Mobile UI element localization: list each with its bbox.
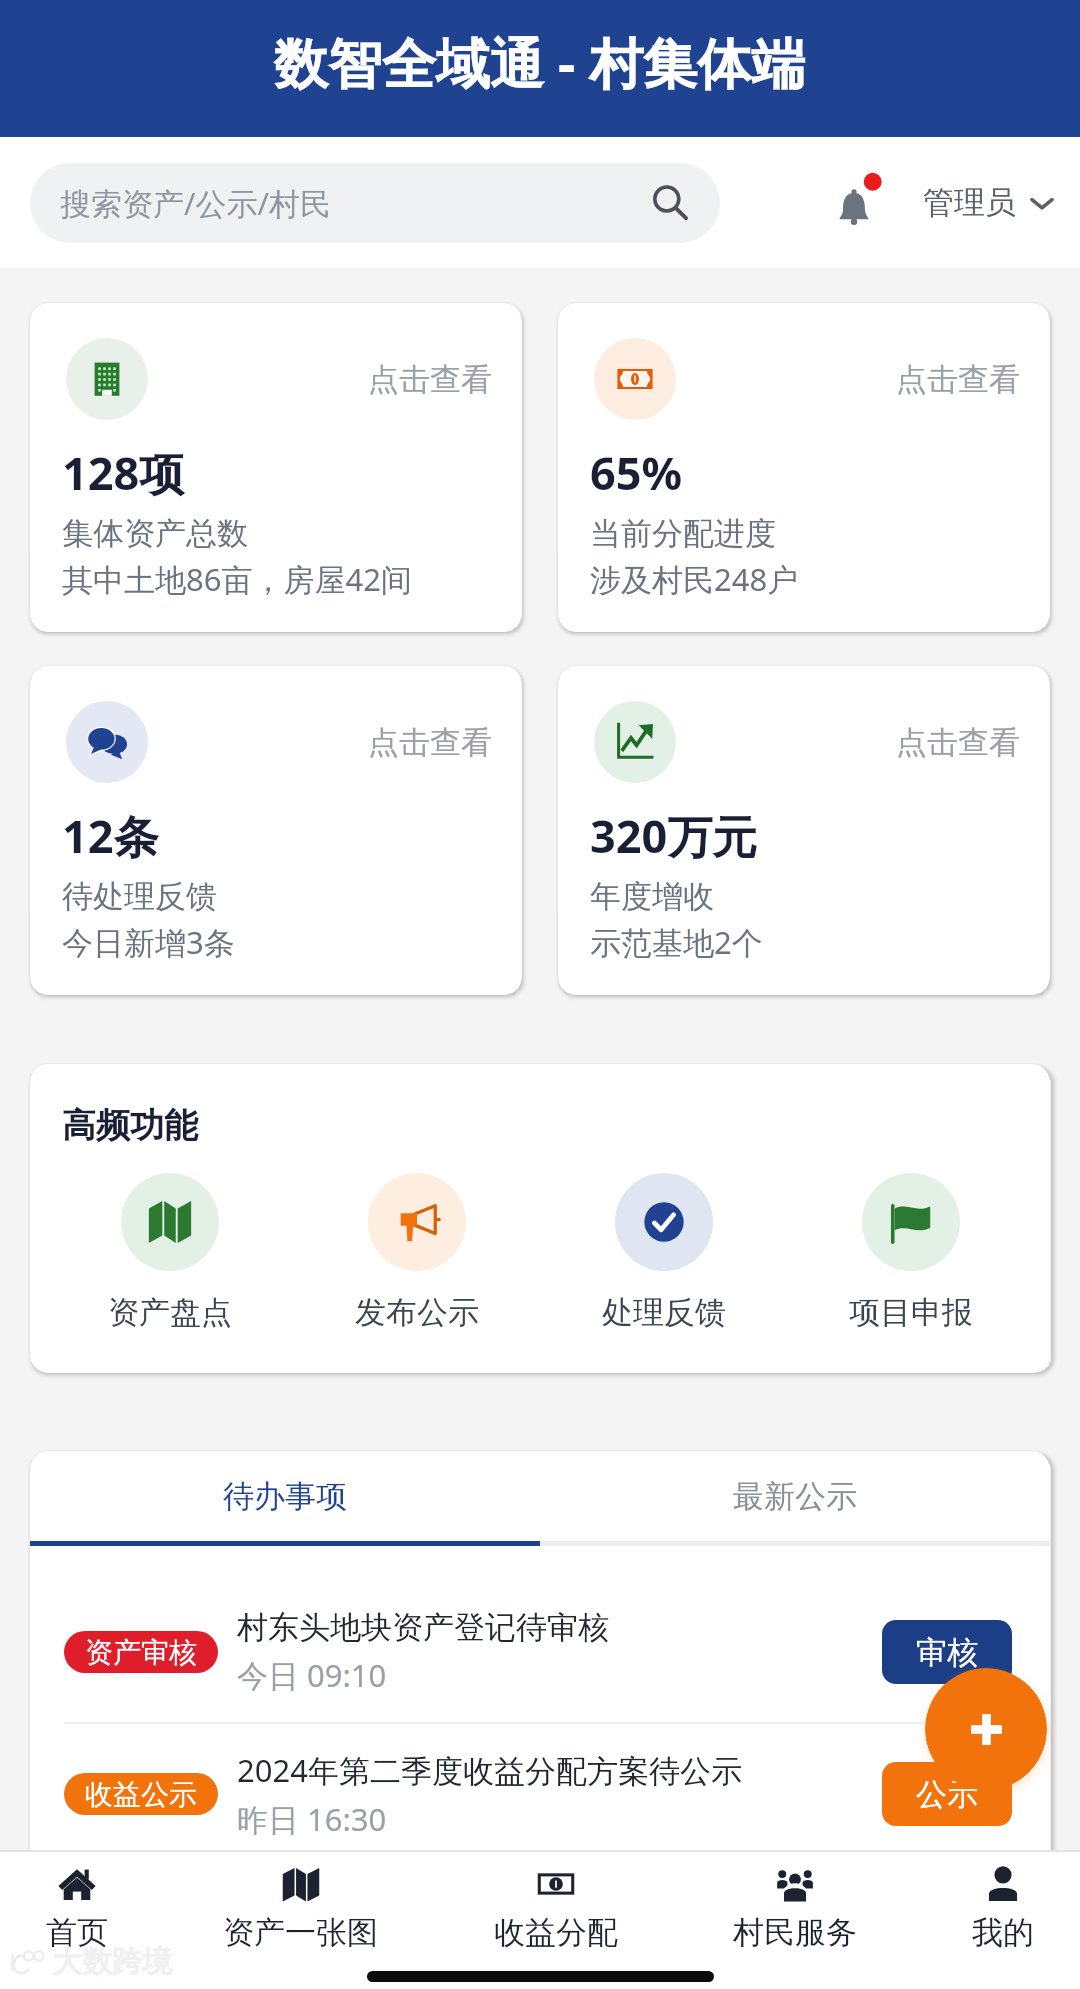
staticText: 待处理反馈 — [62, 877, 217, 916]
staticText: 集体资产总数 — [62, 514, 248, 553]
staticText: 资产一张图 — [223, 1913, 378, 1952]
staticText: 我的 — [972, 1913, 1034, 1952]
button[interactable]: 村民服务 — [733, 1858, 857, 1958]
button[interactable]: 收益公示 — [30, 1724, 1050, 1864]
staticText: 年度增收 — [590, 877, 714, 916]
staticText: 65% — [590, 442, 683, 503]
button[interactable]: 管理员 — [923, 177, 1054, 228]
staticText: 项目申报 — [849, 1293, 973, 1332]
staticText: 待办事项 — [223, 1477, 347, 1516]
staticText: 高频功能 — [62, 1104, 198, 1147]
staticText: 当前分配进度 — [590, 514, 776, 553]
button[interactable]: 点击查看 — [30, 303, 522, 632]
staticText: 其中土地86亩，房屋42间 — [62, 558, 412, 600]
staticText: 搜索资产/公示/村民 — [60, 182, 332, 224]
staticText: 首页 — [46, 1913, 108, 1952]
button[interactable]: 收益分配 — [494, 1858, 618, 1958]
button[interactable]: 点击查看 — [558, 303, 1050, 632]
button[interactable]: 搜索资产/公示/村民 — [30, 163, 720, 243]
button[interactable]: 首页 — [46, 1858, 108, 1958]
staticText: 昨日 16:30 — [237, 1798, 387, 1840]
staticText: 涉及村民248户 — [590, 558, 799, 600]
staticText: 点击查看 — [368, 723, 492, 762]
staticText: 处理反馈 — [602, 1293, 726, 1332]
button[interactable]: 我的 — [972, 1858, 1034, 1958]
staticText: 资产审核 — [85, 1635, 197, 1670]
button[interactable]: 审核 — [882, 1620, 1012, 1684]
button[interactable]: 发布公示 — [293, 1173, 540, 1332]
button[interactable]: 待办事项 — [30, 1451, 540, 1541]
staticText: 收益公示 — [85, 1777, 197, 1812]
staticText: 320万元 — [590, 805, 758, 866]
button[interactable]: 资产审核 — [30, 1582, 1050, 1722]
button[interactable]: 最新公示 — [540, 1451, 1050, 1541]
staticText: 128项 — [62, 442, 185, 503]
button[interactable]: 项目申报 — [787, 1173, 1034, 1332]
staticText: 公示 — [916, 1775, 978, 1814]
button[interactable]: 点击查看 — [30, 666, 522, 995]
button[interactable]: 新增 — [925, 1668, 1047, 1790]
button[interactable]: 资产一张图 — [223, 1858, 378, 1958]
staticText: 资产盘点 — [108, 1293, 232, 1332]
button[interactable]: 点击查看 — [558, 666, 1050, 995]
button[interactable]: 处理反馈 — [540, 1173, 787, 1332]
staticText: 数智全域通 - 村集体端 — [274, 25, 806, 99]
staticText: 今日新增3条 — [62, 921, 235, 963]
staticText: 点击查看 — [896, 723, 1020, 762]
staticText: 12条 — [62, 805, 159, 866]
staticText: 村民服务 — [733, 1913, 857, 1952]
staticText: 大数跨境 — [52, 1943, 172, 1981]
staticText: 收益分配 — [494, 1913, 618, 1952]
button[interactable]: 公示 — [882, 1762, 1012, 1826]
staticText: 点击查看 — [368, 360, 492, 399]
staticText: 今日 09:10 — [237, 1654, 387, 1696]
staticText: 点击查看 — [896, 360, 1020, 399]
staticText: 2024年第二季度收益分配方案待公示 — [237, 1749, 742, 1791]
staticText: 发布公示 — [355, 1293, 479, 1332]
staticText: 示范基地2个 — [590, 921, 763, 963]
staticText: 村东头地块资产登记待审核 — [237, 1608, 609, 1647]
staticText: 管理员 — [923, 183, 1016, 222]
button[interactable]: 通知 — [818, 167, 890, 239]
staticText: 最新公示 — [733, 1477, 857, 1516]
button[interactable]: 资产盘点 — [46, 1173, 293, 1332]
staticText: 审核 — [916, 1633, 978, 1672]
